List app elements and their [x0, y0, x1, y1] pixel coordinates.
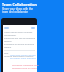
staticText: Occaecat cupidatat non proident sunt in …: [12, 63, 39, 69]
staticText: Lorem ipsum dolor sit amet consectetur a…: [4, 31, 38, 58]
staticText: Velit esse cillum dolore eu fugiat nulla…: [10, 53, 36, 59]
staticText: Share your ideas with the team and colla…: [2, 7, 33, 13]
staticText: Team Collaboration: [2, 2, 37, 7]
